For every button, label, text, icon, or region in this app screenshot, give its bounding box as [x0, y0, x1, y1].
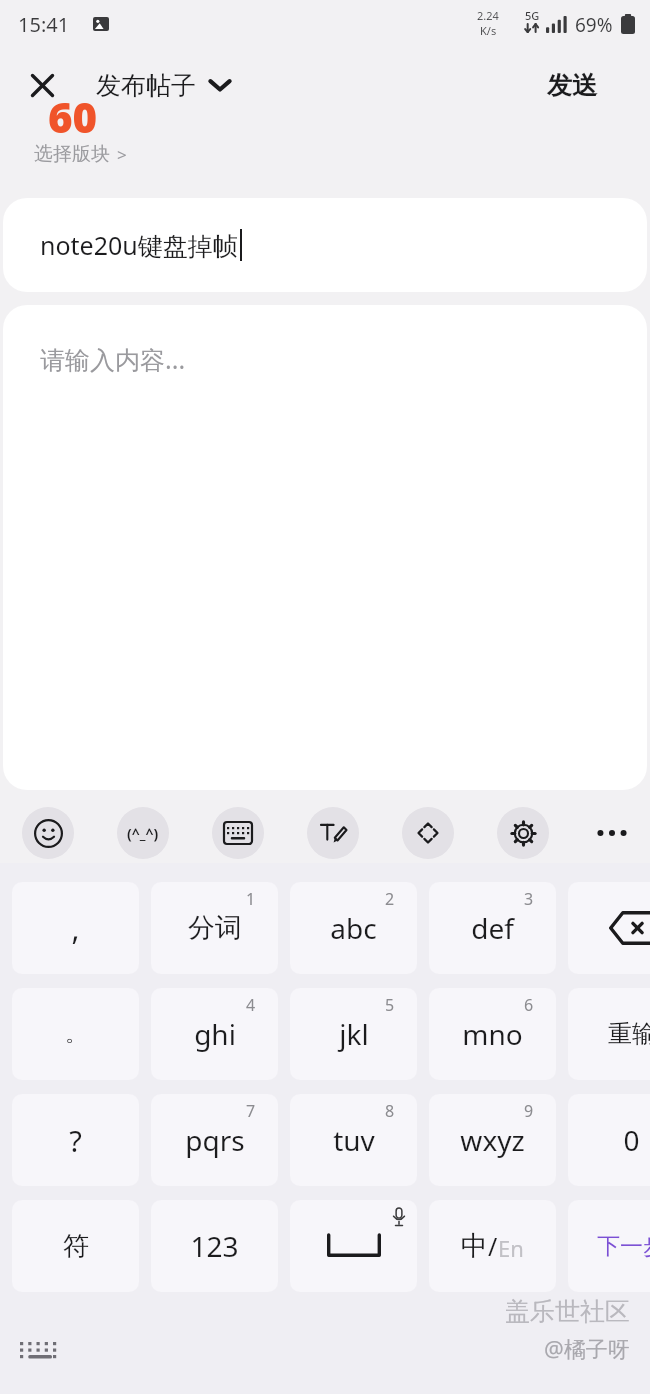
button[interactable]: abc — [290, 882, 417, 974]
staticText: K/s — [480, 23, 497, 38]
staticText: 选择版块 — [34, 142, 110, 166]
staticText: ghi — [194, 1015, 236, 1053]
staticText: 4 — [246, 994, 256, 1016]
button[interactable]: , — [12, 882, 139, 974]
staticText: 分词 — [188, 911, 242, 945]
button[interactable]: Close — [22, 65, 62, 105]
button[interactable]: Hide keyboard — [14, 1336, 62, 1370]
staticText: 60 — [48, 88, 98, 145]
button[interactable]: def — [429, 882, 556, 974]
button[interactable]: More — [586, 807, 638, 859]
button[interactable]: Handwriting — [307, 807, 359, 859]
button[interactable]: 分词 — [151, 882, 278, 974]
staticText: abc — [330, 909, 377, 947]
staticText: ? — [69, 1121, 82, 1160]
button[interactable]: 选择版块 — [34, 137, 127, 171]
staticText: 123 — [190, 1227, 239, 1265]
button[interactable]: 发送 — [516, 62, 628, 108]
staticText: 5 — [385, 994, 395, 1016]
button[interactable]: jkl — [290, 988, 417, 1080]
staticText: 盖乐世社区 — [505, 1296, 630, 1327]
button[interactable]: wxyz — [429, 1094, 556, 1186]
button[interactable]: 123 — [151, 1200, 278, 1292]
button[interactable]: Settings — [497, 807, 549, 859]
staticText: 发布帖子 — [96, 70, 196, 101]
button[interactable]: pqrs — [151, 1094, 278, 1186]
staticText: (^_^) — [127, 824, 159, 843]
button[interactable]: ghi — [151, 988, 278, 1080]
staticText: tuv — [333, 1121, 375, 1159]
button[interactable]: mno — [429, 988, 556, 1080]
button[interactable]: 0 — [568, 1094, 650, 1186]
staticText: 69% — [575, 12, 613, 38]
staticText: 下一步 — [597, 1232, 650, 1261]
staticText: 8 — [385, 1100, 395, 1122]
staticText: 5G — [525, 8, 540, 23]
staticText: 重输 — [608, 1019, 650, 1049]
button[interactable]: note20u键盘掉帧 — [3, 198, 647, 292]
staticText: mno — [462, 1015, 523, 1053]
button[interactable]: Keyboard — [212, 807, 264, 859]
button[interactable]: Space — [290, 1200, 417, 1292]
staticText: / — [488, 1229, 498, 1263]
staticText: 发送 — [547, 70, 597, 101]
button[interactable]: Emoji — [22, 807, 74, 859]
staticText: note20u键盘掉帧 — [40, 228, 238, 262]
staticText: 0 — [623, 1121, 640, 1159]
staticText: > — [117, 143, 127, 166]
button[interactable]: 重输 — [568, 988, 650, 1080]
button[interactable]: Kaomoji — [117, 807, 169, 859]
staticText: 。 — [65, 1020, 87, 1048]
staticText: 9 — [524, 1100, 534, 1122]
staticText: 请输入内容... — [40, 342, 186, 376]
button[interactable]: 请输入内容... — [3, 305, 647, 790]
button[interactable]: Resize — [402, 807, 454, 859]
staticText: @橘子呀 — [544, 1333, 630, 1363]
staticText: 2.24 — [477, 8, 499, 23]
staticText: , — [71, 908, 80, 949]
staticText: 15:41 — [18, 11, 70, 38]
staticText: 1 — [246, 888, 256, 910]
button[interactable]: 下一步 — [568, 1200, 650, 1292]
button[interactable]: Chinese English toggle — [429, 1200, 556, 1292]
button[interactable]: ? — [12, 1094, 139, 1186]
button[interactable]: 符 — [12, 1200, 139, 1292]
staticText: 6 — [524, 994, 534, 1016]
staticText: En — [498, 1233, 524, 1263]
staticText: 3 — [524, 888, 534, 910]
staticText: wxyz — [460, 1121, 525, 1159]
staticText: 2 — [385, 888, 395, 910]
staticText: jkl — [339, 1015, 369, 1053]
staticText: def — [471, 909, 514, 947]
staticText: 中 — [461, 1229, 488, 1263]
button[interactable]: Backspace — [568, 882, 650, 974]
button[interactable]: 发布帖子 — [96, 64, 232, 106]
button[interactable]: tuv — [290, 1094, 417, 1186]
button[interactable]: 。 — [12, 988, 139, 1080]
staticText: 7 — [246, 1100, 256, 1122]
staticText: pqrs — [185, 1121, 245, 1159]
staticText: 符 — [63, 1230, 89, 1263]
